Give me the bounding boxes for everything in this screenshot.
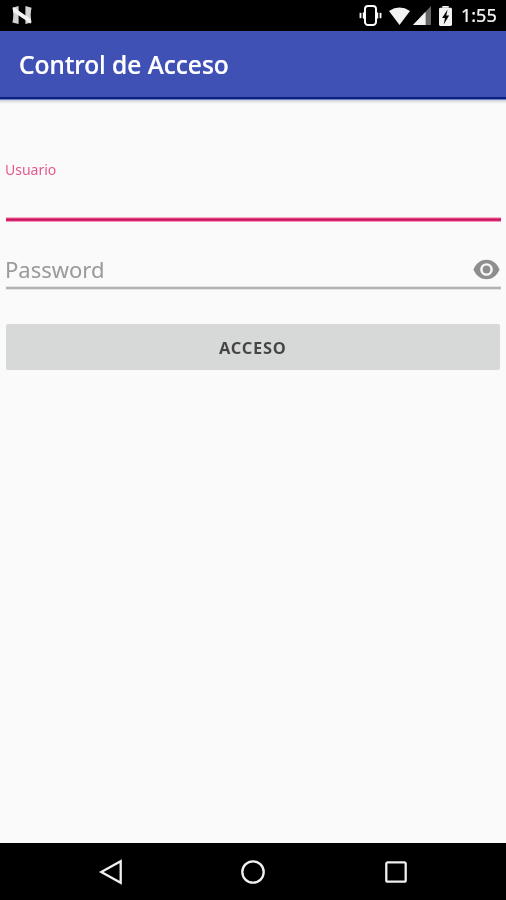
staticText: ACCESO [219,336,287,358]
button[interactable]: Password [6,245,501,290]
button[interactable]: ACCESO [6,324,500,370]
staticText: Usuario [5,160,57,179]
staticText: 1:55 [461,3,497,28]
button[interactable]: Recents [364,843,428,900]
button[interactable]: Usuario [6,150,501,222]
button[interactable]: Back [79,843,143,900]
button[interactable]: Show password [466,249,506,289]
staticText: Password [5,254,105,284]
staticText: Control de Acceso [19,48,229,81]
button[interactable]: Home [221,843,285,900]
